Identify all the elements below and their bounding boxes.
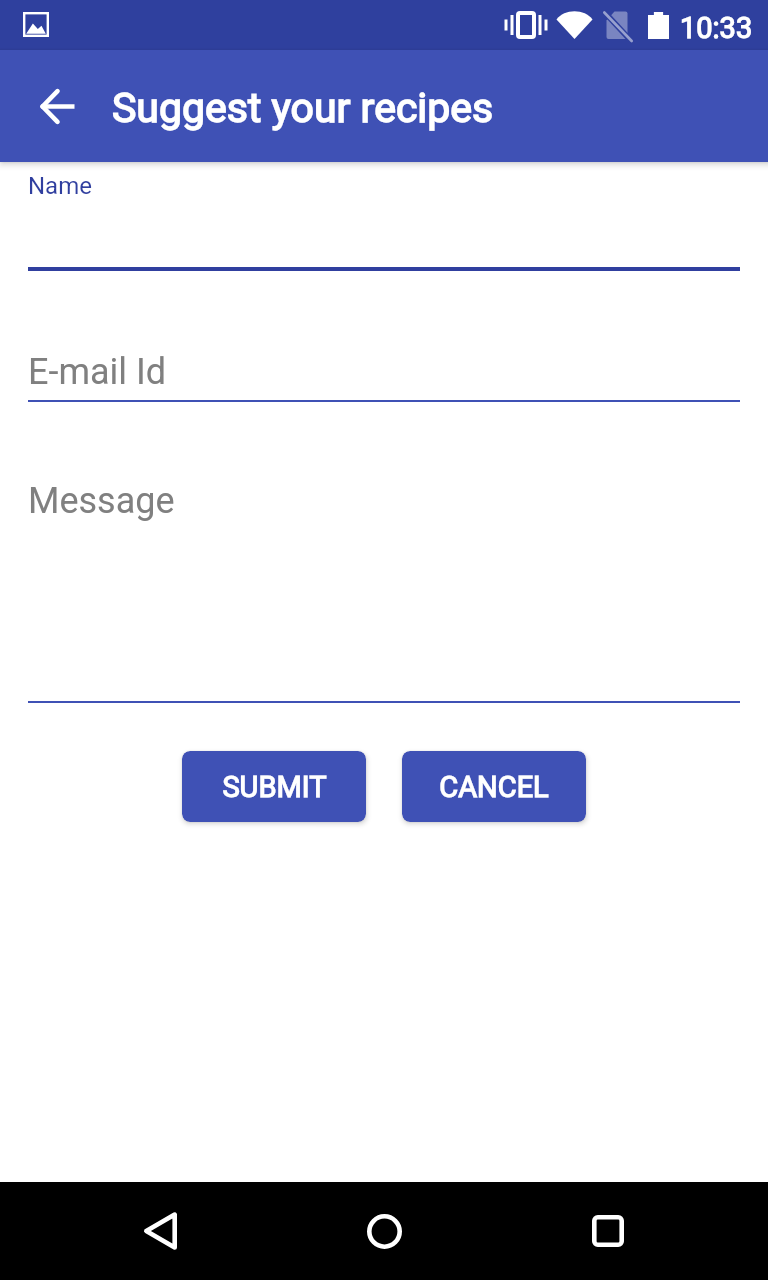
- button[interactable]: Message: [0, 470, 768, 705]
- staticText: E-mail Id: [28, 351, 167, 393]
- button[interactable]: Home: [339, 1189, 429, 1273]
- staticText: Message: [28, 480, 175, 522]
- button[interactable]: SUBMIT: [182, 751, 366, 822]
- staticText: Suggest your recipes: [112, 84, 494, 132]
- button[interactable]: E-mail Id: [0, 340, 768, 405]
- button[interactable]: Name: [0, 163, 768, 273]
- button[interactable]: Recent apps: [563, 1189, 653, 1273]
- button[interactable]: CANCEL: [402, 751, 586, 822]
- staticText: 10:33: [680, 11, 753, 45]
- staticText: Name: [28, 172, 92, 200]
- button[interactable]: Navigate up: [18, 66, 98, 146]
- staticText: SUBMIT: [222, 770, 327, 804]
- staticText: CANCEL: [439, 770, 549, 804]
- button[interactable]: Back: [115, 1189, 205, 1273]
